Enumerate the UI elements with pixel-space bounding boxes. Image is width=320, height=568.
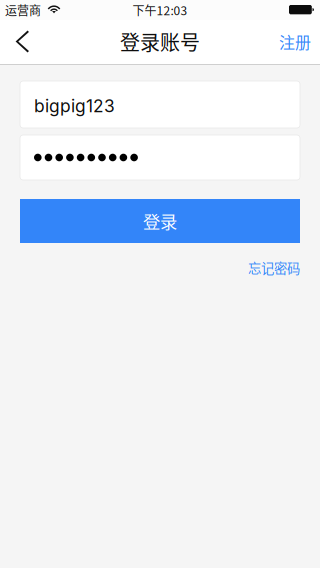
staticText: 注册 — [279, 30, 311, 53]
button[interactable]: Back — [0, 19, 52, 64]
button[interactable]: 注册 — [257, 19, 320, 64]
staticText: bigpig123 — [34, 95, 115, 116]
button[interactable]: 忘记密码 — [248, 258, 300, 277]
button[interactable]: 登录 — [20, 199, 300, 243]
staticText: 登录账号 — [120, 27, 200, 56]
staticText: 登录 — [143, 208, 177, 234]
staticText: 运营商 — [5, 1, 41, 19]
staticText: 忘记密码 — [248, 258, 300, 277]
staticText: 下午12:03 — [132, 1, 187, 19]
button[interactable]: bigpig123 — [20, 81, 300, 128]
button[interactable] — [20, 135, 300, 180]
